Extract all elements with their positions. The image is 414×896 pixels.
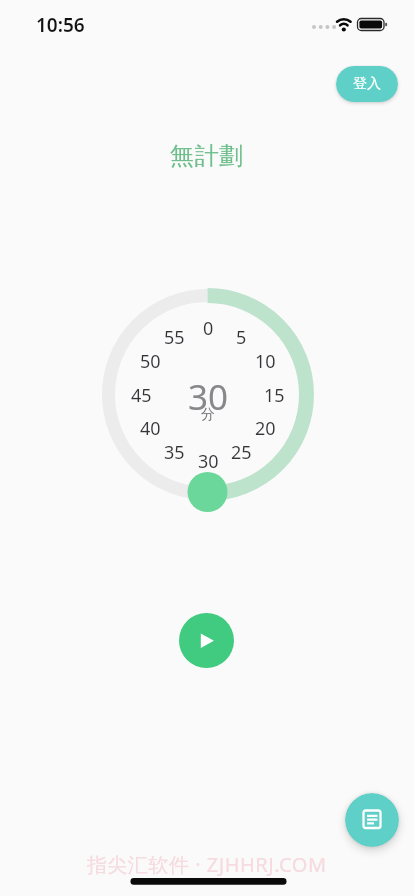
staticText: 45 bbox=[131, 383, 152, 408]
staticText: 25 bbox=[231, 440, 252, 465]
staticText: 登入 bbox=[353, 75, 381, 93]
staticText: 指尖汇软件 · ZJHHRJ.COM bbox=[87, 851, 327, 878]
staticText: 5 bbox=[236, 325, 247, 350]
staticText: 20 bbox=[255, 416, 276, 441]
staticText: 分 bbox=[201, 406, 215, 424]
staticText: 0 bbox=[203, 316, 214, 341]
button[interactable]: 登入 bbox=[336, 66, 398, 102]
staticText: 10:56 bbox=[36, 12, 85, 38]
staticText: 10 bbox=[255, 349, 276, 374]
button[interactable] bbox=[179, 613, 234, 668]
staticText: 40 bbox=[140, 416, 161, 441]
staticText: 30 bbox=[198, 449, 219, 474]
staticText: 35 bbox=[164, 440, 185, 465]
staticText: 50 bbox=[140, 349, 161, 374]
staticText: 55 bbox=[164, 325, 185, 350]
button[interactable] bbox=[345, 793, 399, 847]
staticText: 無計劃 bbox=[170, 141, 244, 171]
staticText: 30 bbox=[188, 373, 229, 417]
staticText: 15 bbox=[264, 383, 285, 408]
